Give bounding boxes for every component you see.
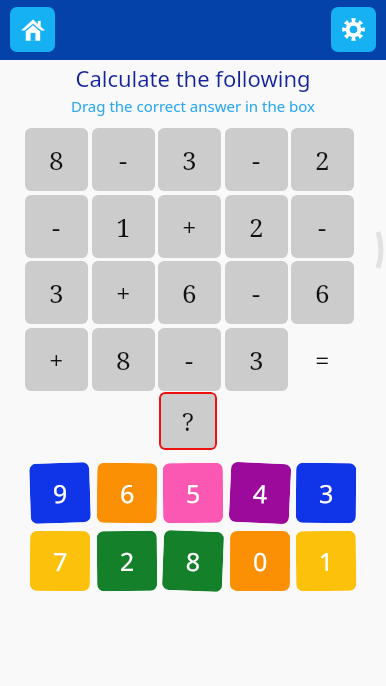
staticText: 5	[186, 476, 201, 510]
button[interactable]: 6	[97, 463, 157, 523]
staticText: 0	[253, 544, 268, 578]
staticText: -	[318, 209, 327, 244]
button[interactable]: 2	[291, 128, 354, 191]
staticText: -	[185, 342, 194, 377]
staticText: Drag the correct answer in the box	[0, 96, 386, 116]
button[interactable]: 0	[230, 531, 290, 591]
staticText: 6	[315, 275, 330, 310]
staticText: -	[52, 209, 61, 244]
button[interactable]: +	[92, 261, 155, 324]
staticText: 3	[49, 275, 64, 310]
button[interactable]: +	[25, 328, 88, 391]
button[interactable]: 3	[25, 261, 88, 324]
button[interactable]: 5	[163, 463, 223, 523]
staticText: 3	[249, 342, 264, 377]
staticText: 8	[116, 342, 131, 377]
button[interactable]: -	[92, 128, 155, 191]
button[interactable]: 1	[296, 531, 356, 591]
staticText: 2	[120, 544, 135, 578]
staticText: 4	[252, 476, 269, 510]
staticText: +	[182, 209, 197, 244]
button[interactable]: 2	[97, 531, 157, 591]
button[interactable]: 3	[225, 328, 288, 391]
button[interactable]: 6	[291, 261, 354, 324]
staticText: 8	[185, 544, 202, 578]
staticText: +	[49, 342, 64, 377]
button[interactable]: -	[25, 195, 88, 258]
button[interactable]: -	[158, 328, 221, 391]
staticText: 1	[319, 544, 334, 578]
button[interactable]: 8	[162, 530, 224, 592]
staticText: 8	[49, 142, 64, 177]
staticText: 3	[319, 476, 334, 510]
button[interactable]: -	[225, 261, 288, 324]
staticText: Calculate the following	[0, 63, 386, 93]
staticText: =	[315, 342, 330, 377]
staticText: +	[116, 275, 131, 310]
button[interactable]: 8	[92, 328, 155, 391]
staticText: 7	[53, 544, 68, 578]
button[interactable]: 8	[25, 128, 88, 191]
button[interactable]: 4	[229, 462, 291, 524]
staticText: 9	[52, 476, 69, 510]
button[interactable]: 1	[92, 195, 155, 258]
button[interactable]: 7	[30, 531, 90, 591]
button[interactable]: 9	[29, 462, 91, 524]
staticText: -	[252, 142, 261, 177]
button[interactable]: Settings	[331, 7, 376, 52]
button[interactable]: ?	[159, 392, 217, 450]
staticText: 2	[249, 209, 264, 244]
button[interactable]: 3	[296, 463, 356, 523]
button[interactable]: Home	[10, 7, 55, 52]
button[interactable]: 6	[158, 261, 221, 324]
staticText: -	[252, 275, 261, 310]
button[interactable]: 3	[158, 128, 221, 191]
button[interactable]: +	[158, 195, 221, 258]
staticText: 3	[182, 142, 197, 177]
button[interactable]: 2	[225, 195, 288, 258]
button[interactable]: -	[291, 195, 354, 258]
staticText: -	[119, 142, 128, 177]
staticText: 6	[182, 275, 197, 310]
button[interactable]: -	[225, 128, 288, 191]
staticText: 6	[120, 476, 135, 510]
staticText: 2	[315, 142, 330, 177]
staticText: 1	[116, 209, 131, 244]
staticText: ?	[182, 404, 194, 438]
